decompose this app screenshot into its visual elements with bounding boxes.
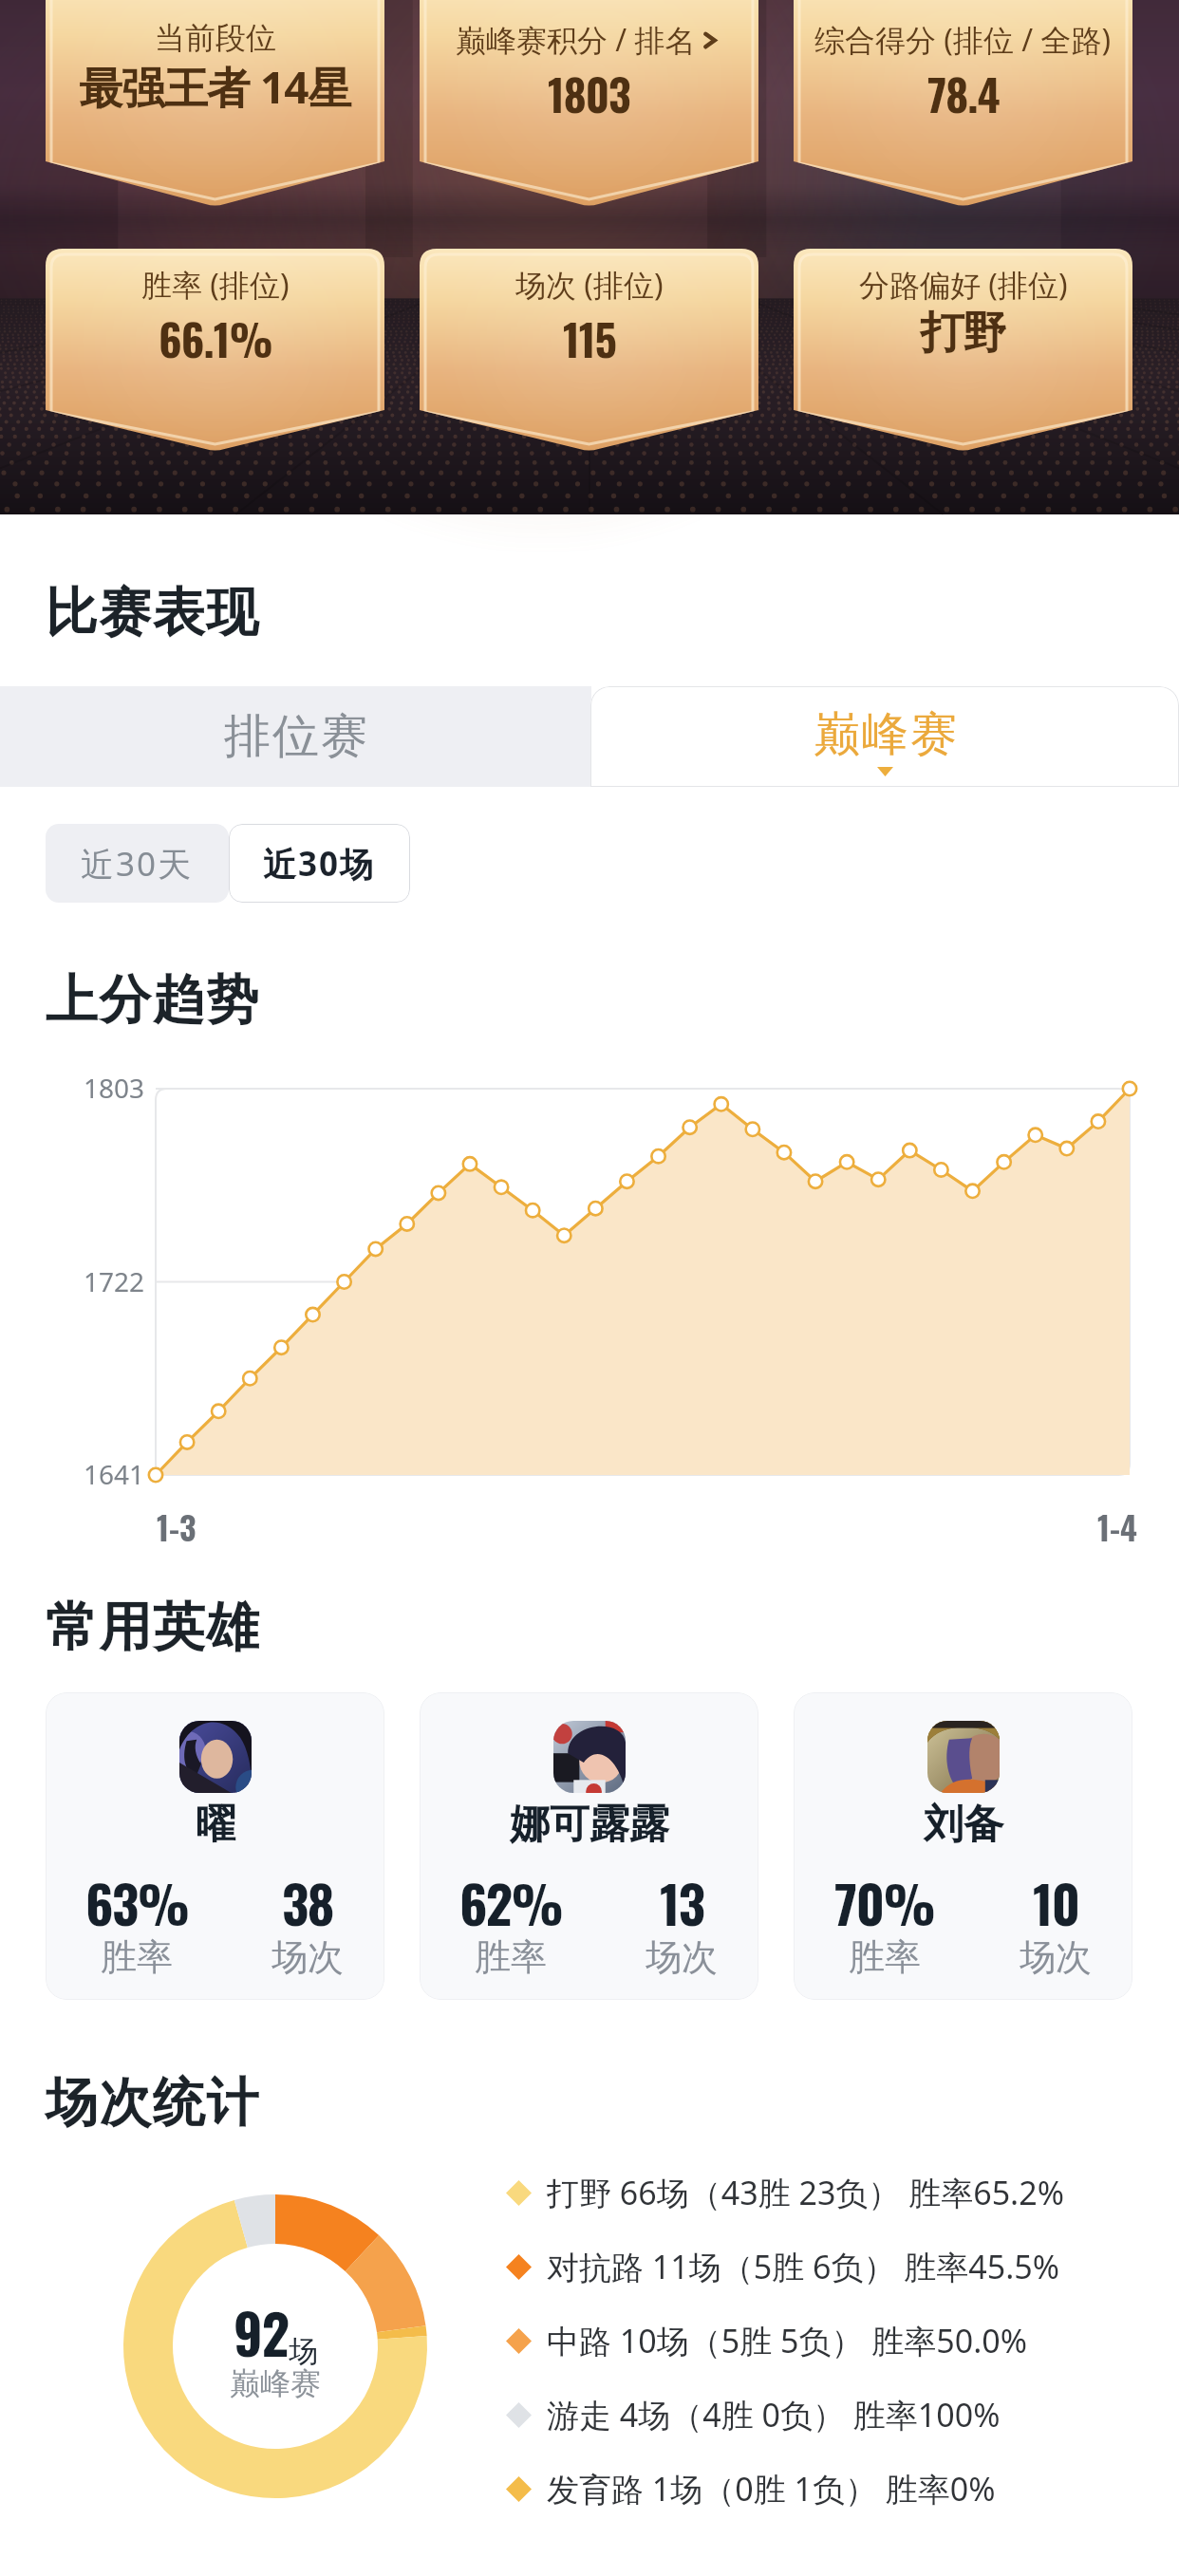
button[interactable]: 巅峰赛积分 / 排名 xyxy=(420,0,758,207)
button[interactable]: 中路 10场（5胜 5负） 胜率50.0% xyxy=(506,2304,1028,2378)
staticText: 近30天 xyxy=(81,841,194,887)
button[interactable]: 对抗路 11场（5胜 6负） 胜率45.5% xyxy=(506,2230,1060,2304)
staticText: 10 xyxy=(1033,1863,1079,1941)
staticText: 场次 xyxy=(646,1934,718,1980)
staticText: 刘备 xyxy=(924,1800,1003,1850)
staticText: 巅峰赛积分 / 排名 xyxy=(456,19,696,61)
button[interactable]: 游走 4场（4胜 0负） 胜率100% xyxy=(506,2378,1001,2452)
staticText: 打野 66场（43胜 23负） 胜率65.2% xyxy=(547,2171,1064,2214)
staticText: 场 xyxy=(289,2333,318,2370)
staticText: 66.1% xyxy=(159,306,272,370)
button[interactable]: 打野 66场（43胜 23负） 胜率65.2% xyxy=(506,2156,1064,2230)
staticText: 1722 xyxy=(84,1263,145,1299)
staticText: 娜可露露 xyxy=(510,1800,669,1850)
button[interactable]: 娜可露露 xyxy=(420,1692,758,2000)
staticText: 场次统计 xyxy=(45,2070,259,2136)
staticText: 最强王者 14星 xyxy=(79,57,351,117)
staticText: 胜率 (排位) xyxy=(141,264,290,306)
button[interactable]: 分路偏好 (排位) xyxy=(794,249,1132,452)
button[interactable]: 发育路 1场（0胜 1负） 胜率0% xyxy=(506,2452,996,2526)
staticText: 打野 xyxy=(921,306,1006,361)
staticText: 排位赛 xyxy=(223,707,368,766)
staticText: 1-4 xyxy=(1097,1503,1137,1550)
staticText: 1803 xyxy=(84,1070,145,1106)
button[interactable]: 近30场 xyxy=(229,824,410,903)
button[interactable]: 曜 xyxy=(46,1692,384,2000)
staticText: 1803 xyxy=(548,61,630,125)
staticText: 92 xyxy=(234,2292,289,2372)
staticText: 比赛表现 xyxy=(45,580,259,645)
staticText: 1641 xyxy=(84,1456,145,1492)
staticText: 曜 xyxy=(196,1800,235,1850)
staticText: 游走 4场（4胜 0负） 胜率100% xyxy=(547,2393,1001,2436)
button[interactable]: 场次 (排位) xyxy=(420,249,758,452)
staticText: 胜率 xyxy=(101,1934,173,1980)
staticText: 巅峰赛 xyxy=(813,705,958,764)
staticText: 38 xyxy=(282,1863,333,1941)
staticText: 上分趋势 xyxy=(45,967,259,1033)
button[interactable]: 排位赛 xyxy=(0,686,591,787)
staticText: 62% xyxy=(459,1863,563,1941)
staticText: 13 xyxy=(660,1863,704,1941)
staticText: 70% xyxy=(834,1863,935,1941)
staticText: 分路偏好 (排位) xyxy=(859,264,1068,306)
staticText: 胜率 xyxy=(849,1934,921,1980)
staticText: 常用英雄 xyxy=(45,1595,259,1660)
staticText: 场次 xyxy=(1020,1934,1092,1980)
button[interactable]: 胜率 (排位) xyxy=(46,249,384,452)
staticText: 当前段位 xyxy=(155,19,276,57)
button[interactable]: 综合得分 (排位 / 全路) xyxy=(794,0,1132,207)
staticText: 115 xyxy=(563,306,616,370)
staticText: 中路 10场（5胜 5负） 胜率50.0% xyxy=(547,2319,1028,2362)
staticText: 近30场 xyxy=(263,841,376,887)
staticText: 78.4 xyxy=(927,61,1000,125)
staticText: 63% xyxy=(85,1863,189,1941)
staticText: 1-3 xyxy=(157,1503,196,1550)
staticText: 发育路 1场（0胜 1负） 胜率0% xyxy=(547,2467,996,2511)
staticText: 场次 xyxy=(271,1934,344,1980)
button[interactable]: 巅峰赛 xyxy=(590,686,1179,787)
button[interactable]: 刘备 xyxy=(794,1692,1132,2000)
button[interactable]: 近30天 xyxy=(46,824,229,903)
staticText: 综合得分 (排位 / 全路) xyxy=(814,19,1112,61)
button[interactable]: 当前段位 xyxy=(46,0,384,207)
staticText: 场次 (排位) xyxy=(515,264,664,306)
staticText: 巅峰赛 xyxy=(230,2364,321,2402)
staticText: 胜率 xyxy=(475,1934,547,1980)
staticText: 对抗路 11场（5胜 6负） 胜率45.5% xyxy=(547,2245,1060,2288)
